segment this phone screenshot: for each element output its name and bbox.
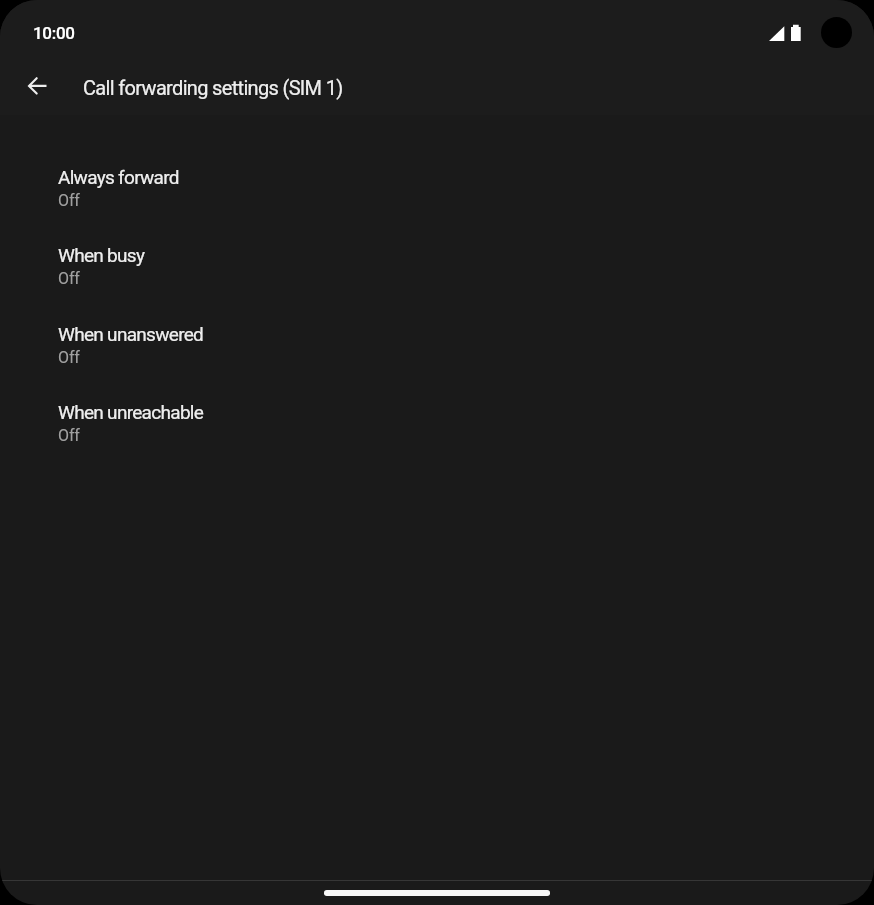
staticText: Off <box>58 269 80 288</box>
staticText: Always forward <box>58 166 179 188</box>
staticText: Off <box>58 191 80 210</box>
staticText: When busy <box>58 244 145 266</box>
staticText: Off <box>58 426 80 445</box>
staticText: When unreachable <box>58 401 204 423</box>
button[interactable]: Back <box>14 62 62 110</box>
staticText: When unanswered <box>58 323 204 345</box>
staticText: 10:00 <box>33 23 75 43</box>
button[interactable]: When unreachable <box>0 388 874 467</box>
staticText: Call forwarding settings (SIM 1) <box>83 76 343 99</box>
other: Signal and battery status <box>769 24 803 42</box>
staticText: Off <box>58 348 80 367</box>
button[interactable]: When unanswered <box>0 310 874 389</box>
button[interactable]: When busy <box>0 231 874 310</box>
button[interactable]: Always forward <box>0 153 874 232</box>
